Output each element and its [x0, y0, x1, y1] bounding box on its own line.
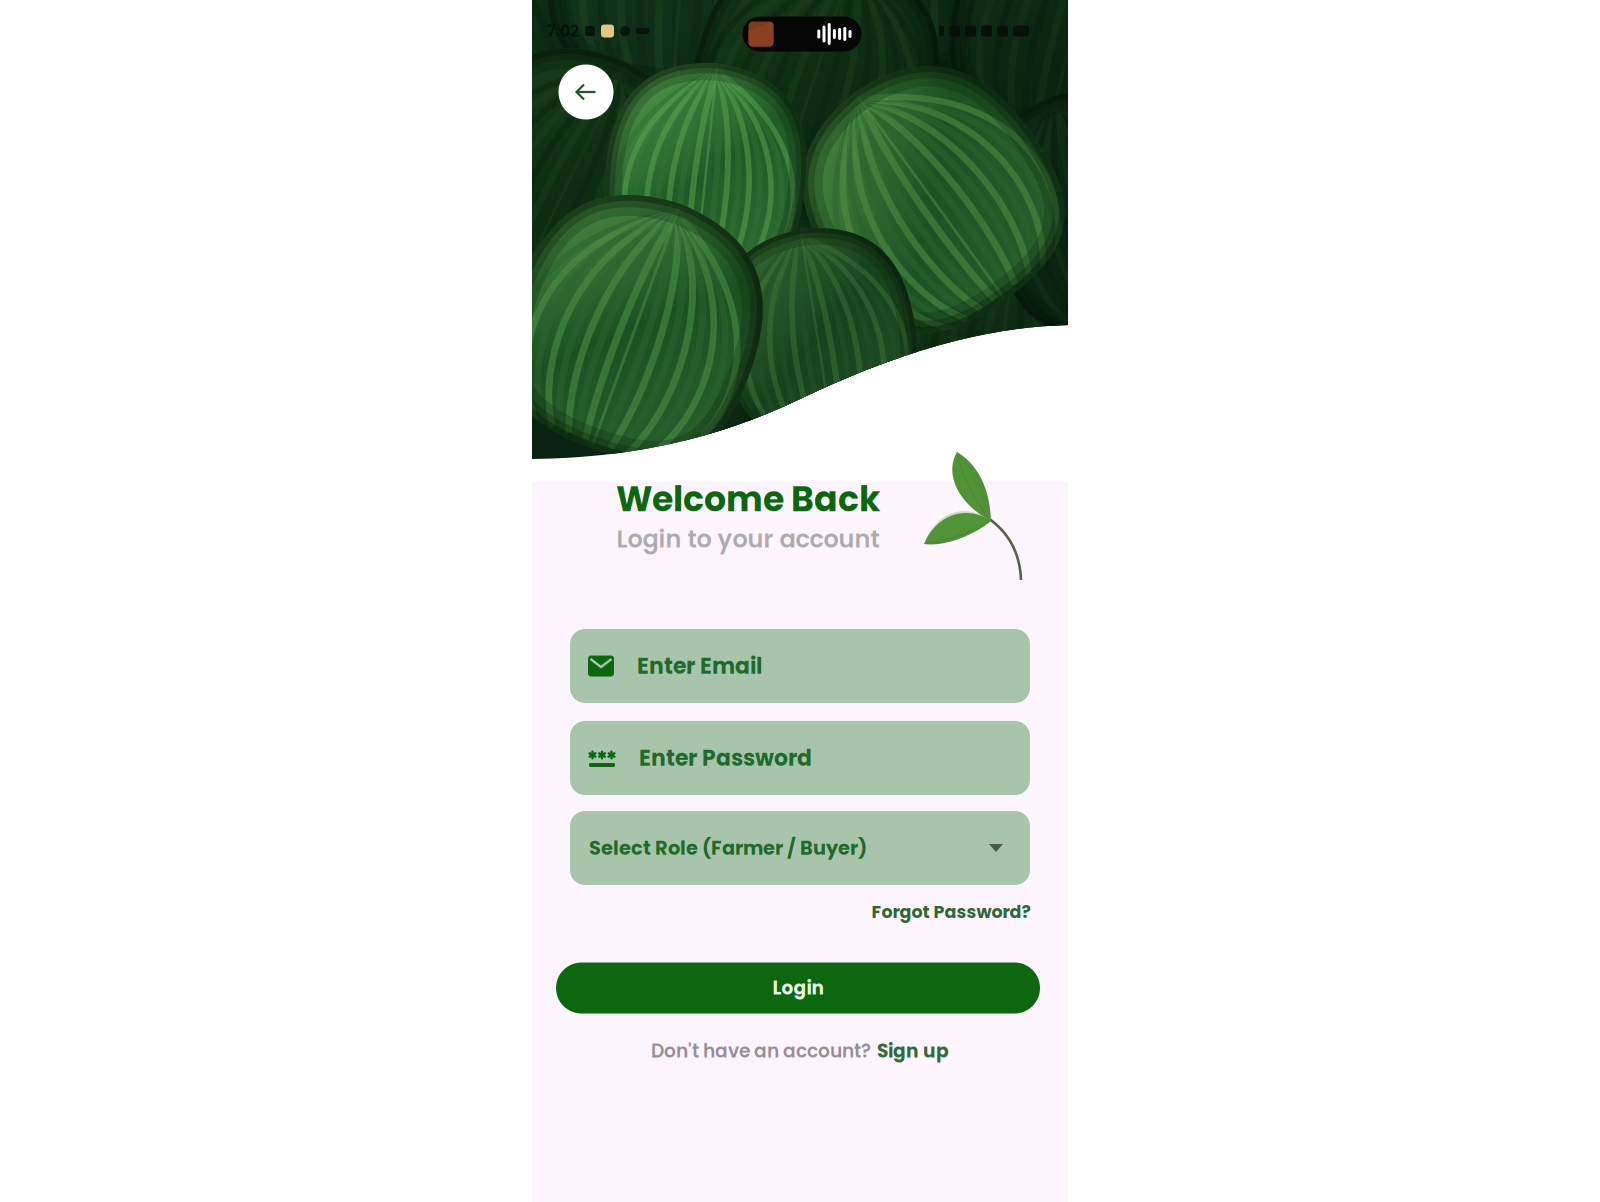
button[interactable]: Select Role (Farmer / Buyer): [570, 811, 1030, 885]
button[interactable]: Back: [558, 64, 613, 119]
staticText: Forgot Password?: [871, 900, 1030, 924]
staticText: Don't have an account?: [651, 1038, 871, 1064]
staticText: Select Role (Farmer / Buyer): [589, 834, 867, 862]
button[interactable]: Enter Email: [570, 629, 1030, 703]
staticText: Login to your account: [616, 522, 879, 556]
button[interactable]: Enter Password: [570, 721, 1030, 795]
button[interactable]: Forgot Password?: [869, 897, 1032, 927]
button[interactable]: Login: [556, 962, 1040, 1013]
staticText: 7:02: [547, 20, 579, 42]
staticText: Welcome Back: [616, 475, 880, 523]
staticText: Sign up: [877, 1038, 949, 1064]
button[interactable]: Don't have an account?: [651, 1034, 949, 1068]
staticText: Enter Password: [639, 743, 812, 773]
staticText: Login: [772, 975, 823, 1001]
staticText: Enter Email: [637, 651, 762, 681]
